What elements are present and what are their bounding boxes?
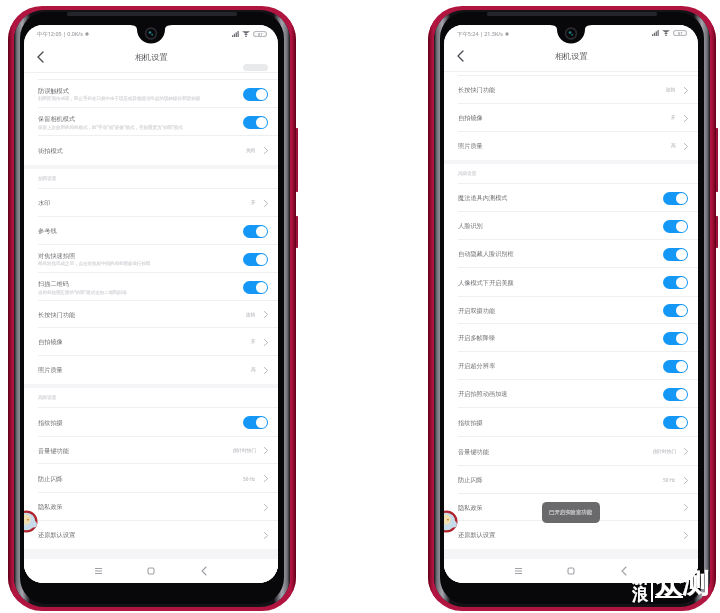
staticText: 开启多帧降噪 <box>458 334 496 342</box>
staticText: 高级设置 <box>458 171 477 177</box>
button[interactable]: 还原默认设置 <box>444 521 698 549</box>
button[interactable]: 隐私政策 <box>444 494 698 521</box>
staticText: 众测 <box>655 567 709 601</box>
staticText: 中午12:05 | 0.0K/s <box>37 30 83 37</box>
staticText: 关闭 <box>246 148 256 154</box>
button[interactable]: 自动隐藏人脸识别框 <box>444 240 698 268</box>
button[interactable]: 音量键功能 <box>24 437 278 464</box>
button[interactable]: Home <box>554 559 588 583</box>
button[interactable]: 自拍镜像 <box>24 328 278 356</box>
staticText: 水印 <box>38 199 251 207</box>
staticText: 人脸识别 <box>458 222 483 230</box>
button[interactable]: 防止闪烁 <box>444 466 698 494</box>
button[interactable]: Toggle <box>663 416 688 429</box>
button[interactable]: 人脸识别 <box>444 212 698 240</box>
staticText: 开启双摄功能 <box>458 307 496 315</box>
button[interactable]: Toggle <box>243 281 268 294</box>
staticText: 87 <box>258 32 263 36</box>
staticText: 防误触模式 <box>38 87 69 95</box>
staticText: 参考线 <box>38 227 57 235</box>
button[interactable]: 水印 <box>24 189 278 217</box>
staticText: 开 <box>251 339 256 345</box>
button[interactable]: Toggle <box>663 388 688 401</box>
staticText: 防止闪烁 <box>38 475 243 483</box>
staticText: 利用距离传感器，防止手机在口袋中由于误压或异物遮挡引起的误触操作和误拍摄 <box>38 96 200 102</box>
button[interactable]: Toggle <box>243 253 268 266</box>
button[interactable]: 对焦快速拍照 <box>24 245 278 273</box>
button[interactable]: 防止闪烁 <box>24 464 278 493</box>
button[interactable]: Toggle <box>663 360 688 373</box>
staticText: 倒计时快门 <box>653 449 676 455</box>
button[interactable]: 照片质量 <box>24 356 278 384</box>
button[interactable]: Back <box>24 42 56 72</box>
button[interactable]: 还原默认设置 <box>24 521 278 549</box>
button[interactable]: 人像模式下开启美颜 <box>444 268 698 297</box>
staticText: 50 Hz <box>243 476 256 482</box>
button[interactable]: Recents <box>501 559 535 583</box>
staticText: 照片质量 <box>38 366 251 374</box>
button[interactable]: 隐私政策 <box>24 493 278 521</box>
button[interactable]: 长按快门功能 <box>24 301 278 328</box>
staticText: 自动隐藏人脸识别框 <box>458 250 514 258</box>
staticText: 50 Hz <box>663 477 676 483</box>
staticText: 街拍模式 <box>38 147 246 155</box>
button[interactable]: 开启双摄功能 <box>444 297 698 324</box>
staticText: 隐私政策 <box>458 504 676 512</box>
staticText: 还原默认设置 <box>38 531 256 539</box>
staticText: 相机设置 <box>555 51 588 61</box>
button[interactable]: 街拍模式 <box>24 136 278 165</box>
staticText: 魔法道具内测模式 <box>458 194 508 202</box>
staticText: 保留相机模式 <box>38 115 76 123</box>
button[interactable]: 扫描二维码 <box>24 273 278 301</box>
button[interactable]: 长按快门功能 <box>444 76 698 104</box>
staticText: 倒计时快门 <box>233 448 256 454</box>
button[interactable]: 防误触模式 <box>24 80 278 108</box>
button[interactable]: Back <box>187 559 221 583</box>
staticText: 新 <box>632 568 648 588</box>
button[interactable]: Toggle <box>243 225 268 238</box>
staticText: 自拍镜像 <box>38 338 251 346</box>
staticText: 开启拍照动画加速 <box>458 390 508 398</box>
staticText: 扫描二维码 <box>38 280 69 288</box>
button[interactable]: Toggle <box>663 248 688 261</box>
staticText: 高 <box>671 143 676 149</box>
button[interactable]: Toggle <box>243 88 268 101</box>
button[interactable]: Toggle <box>663 304 688 317</box>
staticText: 自拍镜像 <box>458 114 671 122</box>
button[interactable]: Toggle <box>663 220 688 233</box>
button[interactable]: Toggle <box>243 416 268 429</box>
staticText: 87 <box>678 31 683 35</box>
staticText: 高级设置 <box>38 395 57 401</box>
button[interactable]: 指纹拍摄 <box>444 408 698 437</box>
button[interactable]: Toggle <box>663 332 688 345</box>
button[interactable]: Back <box>444 41 476 71</box>
button[interactable]: 开启超分辨率 <box>444 352 698 380</box>
button[interactable]: 保留相机模式 <box>24 108 278 136</box>
staticText: 隐私政策 <box>38 503 256 511</box>
button[interactable]: 开启拍照动画加速 <box>444 380 698 408</box>
staticText: 照片质量 <box>458 142 671 150</box>
staticText: 高 <box>251 367 256 373</box>
staticText: 已开启实验室功能 <box>549 509 593 516</box>
staticText: 开启超分辨率 <box>458 362 496 370</box>
button[interactable]: Recents <box>81 559 115 583</box>
staticText: 浪 <box>632 585 648 605</box>
button[interactable]: 自拍镜像 <box>444 104 698 132</box>
staticText: 指纹拍摄 <box>458 419 483 427</box>
staticText: 音量键功能 <box>458 448 653 456</box>
staticText: 还原默认设置 <box>458 531 676 539</box>
button[interactable]: 照片质量 <box>444 132 698 160</box>
button[interactable]: 参考线 <box>24 217 278 245</box>
staticText: 拍照设置 <box>38 176 57 182</box>
button[interactable]: Home <box>134 559 168 583</box>
button[interactable]: 魔法道具内测模式 <box>444 184 698 212</box>
button[interactable]: Toggle <box>243 116 268 129</box>
button[interactable]: Toggle <box>663 276 688 289</box>
staticText: 相机对焦完成之后，点击对焦框中间的相机图标进行拍照 <box>38 261 151 267</box>
button[interactable]: 指纹拍摄 <box>24 408 278 437</box>
staticText: 人像模式下开启美颜 <box>458 279 514 287</box>
button[interactable]: 音量键功能 <box>444 437 698 466</box>
button[interactable]: Toggle <box>663 192 688 205</box>
button[interactable]: 开启多帧降噪 <box>444 324 698 352</box>
button[interactable]: Back <box>607 559 641 583</box>
